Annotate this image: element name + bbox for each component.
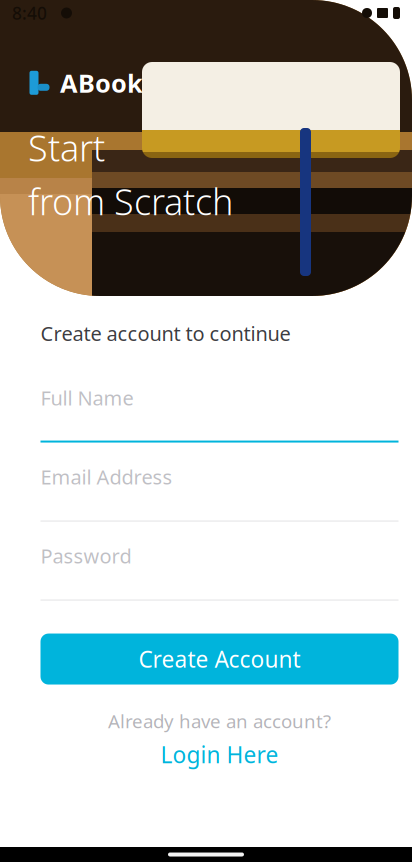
button[interactable]: Login Here <box>160 739 278 769</box>
staticText: 8:40 <box>12 1 47 24</box>
staticText: Email Address <box>40 464 172 490</box>
staticText: Password <box>40 543 131 569</box>
button[interactable]: Create Account <box>40 634 398 685</box>
staticText: Start <box>28 124 105 171</box>
staticText: ABook <box>60 66 143 100</box>
staticText: Create account to continue <box>40 320 290 347</box>
staticText: Login Here <box>160 739 278 769</box>
staticText: from Scratch <box>28 177 233 225</box>
staticText: Already have an account? <box>108 709 331 733</box>
staticText: Create Account <box>138 644 300 674</box>
staticText: Full Name <box>40 385 133 411</box>
